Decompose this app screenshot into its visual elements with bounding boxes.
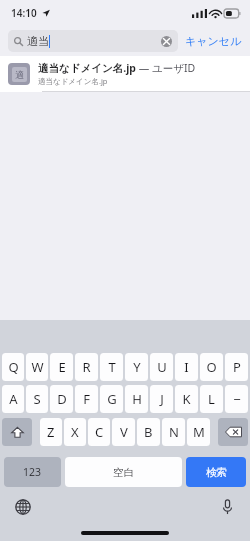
staticText: Z <box>47 423 55 441</box>
button[interactable]: Shift <box>2 418 32 446</box>
staticText: J <box>160 390 164 408</box>
button[interactable]: B <box>137 418 160 446</box>
staticText: F <box>83 390 90 408</box>
staticText: 検索 <box>206 466 227 479</box>
button[interactable]: − <box>225 385 248 413</box>
button[interactable]: Clear text <box>160 35 172 47</box>
staticText: − <box>233 390 241 408</box>
button[interactable]: P <box>225 353 248 381</box>
button[interactable]: O <box>200 353 223 381</box>
staticText: V <box>120 423 128 441</box>
button[interactable]: H <box>125 385 148 413</box>
staticText: C <box>95 423 104 441</box>
button[interactable]: I <box>175 353 198 381</box>
staticText: キャンセル <box>185 34 242 48</box>
staticText: 適 <box>15 69 24 80</box>
button[interactable]: D <box>50 385 73 413</box>
staticText: 14:10 <box>11 6 37 20</box>
staticText: I <box>184 358 189 376</box>
button[interactable]: E <box>50 353 73 381</box>
staticText: — ユーザID <box>136 61 196 75</box>
staticText: R <box>82 358 91 376</box>
staticText: G <box>107 390 117 408</box>
button[interactable]: キャンセル <box>185 30 242 52</box>
staticText: 適当 <box>27 34 49 48</box>
button[interactable]: 123 <box>4 457 61 487</box>
staticText: N <box>169 423 179 441</box>
button[interactable]: S <box>26 385 48 413</box>
staticText: Y <box>133 358 141 376</box>
staticText: X <box>71 423 79 441</box>
staticText: U <box>157 358 167 376</box>
button[interactable]: T <box>100 353 123 381</box>
button[interactable]: G <box>100 385 123 413</box>
staticText: T <box>108 358 116 376</box>
staticText: A <box>9 390 18 408</box>
button[interactable]: Y <box>125 353 148 381</box>
staticText: L <box>208 390 215 408</box>
button[interactable]: Z <box>40 418 62 446</box>
button[interactable]: Dictate <box>217 497 237 517</box>
button[interactable]: Backspace <box>218 418 248 446</box>
button[interactable]: Change keyboard language <box>13 497 33 517</box>
staticText: 適当なドメイン名.jp <box>38 61 136 75</box>
button[interactable]: X <box>64 418 86 446</box>
staticText: 123 <box>23 465 42 479</box>
button[interactable]: 適 <box>0 56 250 92</box>
staticText: 空白 <box>113 466 134 479</box>
staticText: Q <box>8 358 19 376</box>
button[interactable]: C <box>88 418 110 446</box>
staticText: H <box>132 390 142 408</box>
button[interactable]: A <box>2 385 24 413</box>
staticText: K <box>182 390 191 408</box>
button[interactable]: N <box>162 418 185 446</box>
button[interactable]: W <box>26 353 48 381</box>
button[interactable]: 空白 <box>65 457 182 487</box>
button[interactable]: L <box>200 385 223 413</box>
button[interactable]: Q <box>2 353 24 381</box>
staticText: S <box>33 390 41 408</box>
staticText: E <box>58 358 66 376</box>
button[interactable]: R <box>75 353 98 381</box>
staticText: D <box>57 390 67 408</box>
button[interactable]: K <box>175 385 198 413</box>
staticText: O <box>206 358 217 376</box>
staticText: B <box>144 423 153 441</box>
staticText: M <box>193 423 205 441</box>
staticText: 適当なドメイン名.jp <box>38 76 108 86</box>
button[interactable]: 検索 <box>186 457 246 487</box>
button[interactable]: V <box>112 418 135 446</box>
button[interactable]: M <box>187 418 210 446</box>
staticText: P <box>233 358 241 376</box>
staticText: W <box>31 358 44 376</box>
button[interactable]: F <box>75 385 98 413</box>
button[interactable]: J <box>150 385 173 413</box>
button[interactable]: U <box>150 353 173 381</box>
button[interactable]: 適当 <box>8 30 178 52</box>
